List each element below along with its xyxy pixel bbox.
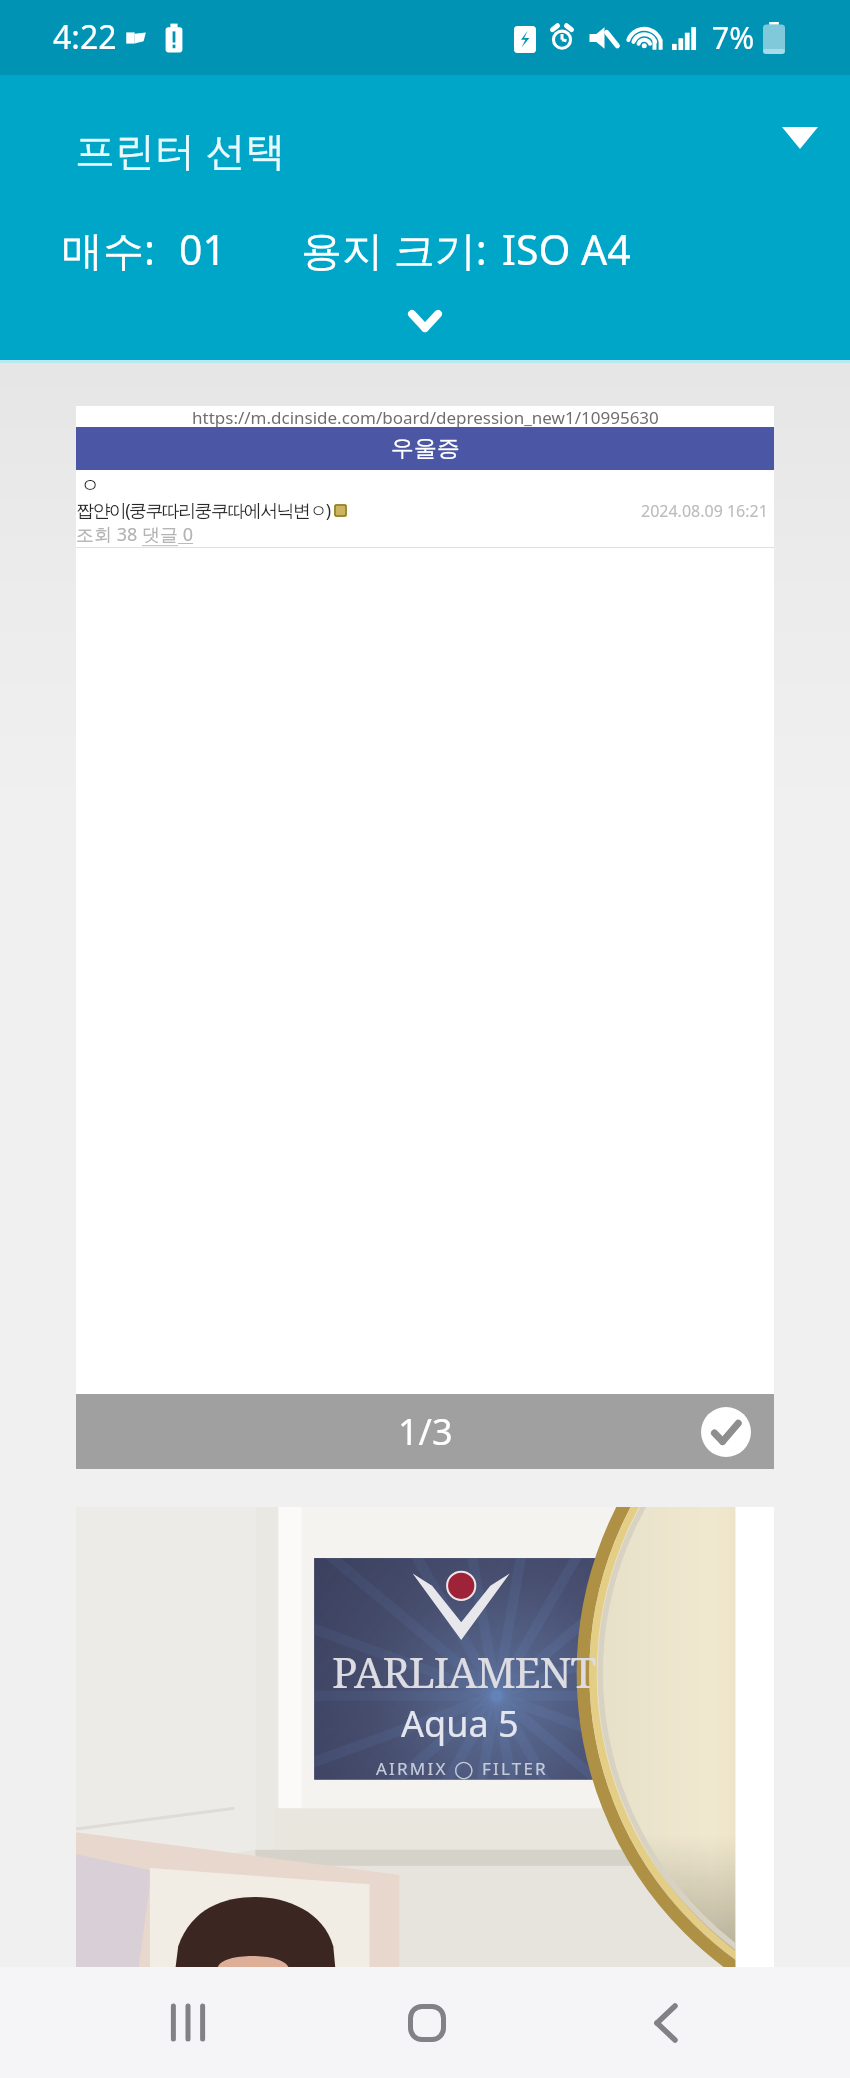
staticText: 조회 38: [76, 522, 142, 547]
button[interactable]: PARLIAMENT: [76, 1507, 774, 1967]
staticText: Aqua 5: [401, 1699, 519, 1748]
button[interactable]: 프린터 선택: [0, 75, 850, 200]
staticText: 2024.08.09 16:21: [641, 500, 768, 522]
staticText: 댓글 0: [142, 522, 193, 547]
button[interactable]: Selected: [701, 1407, 751, 1457]
staticText: 매수:: [62, 221, 155, 277]
button[interactable]: Home: [370, 1967, 484, 2078]
staticText: 우울증: [391, 434, 460, 463]
staticText: 1/3: [398, 1407, 453, 1456]
staticText: https://m.dcinside.com/board/depression_…: [192, 406, 659, 427]
staticText: ISO A4: [502, 221, 631, 277]
button[interactable]: Back: [609, 1967, 723, 2078]
button[interactable]: Choose printer: [774, 112, 826, 164]
staticText: 프린터 선택: [75, 122, 286, 177]
staticText: 용지 크기:: [301, 221, 486, 277]
staticText: 짭얀이(쿵쿠따리쿵쿠따에서닉변ㅇ): [76, 498, 330, 523]
other: Do not disturb: [124, 24, 152, 52]
staticText: 4:22: [53, 15, 117, 59]
staticText: 7%: [712, 17, 755, 58]
button[interactable]: https://m.dcinside.com/board/depression_…: [76, 406, 774, 1469]
staticText: 01: [179, 221, 226, 277]
button[interactable]: Recent apps: [131, 1967, 245, 2078]
button[interactable]: Expand options: [0, 293, 850, 349]
staticText: AIRMIX ◯ FILTER: [376, 1757, 548, 1780]
staticText: PARLIAMENT: [332, 1643, 595, 1700]
other: Battery alert: [164, 23, 184, 53]
staticText: ㅇ: [80, 473, 100, 498]
